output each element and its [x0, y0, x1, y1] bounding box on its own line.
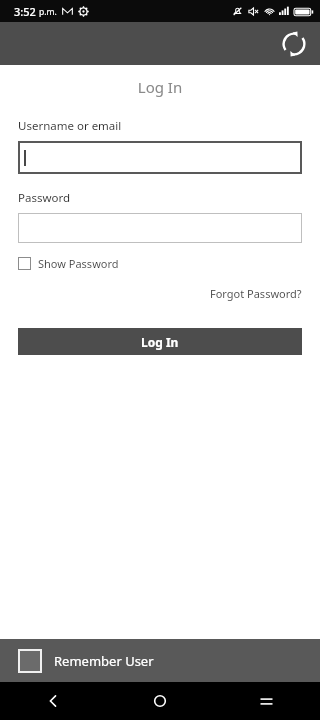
- button[interactable]: Log In: [18, 328, 302, 355]
- button[interactable]: Recent apps: [213, 682, 320, 720]
- button[interactable]: Forgot Password?: [210, 286, 302, 301]
- button[interactable]: Show Password: [18, 256, 119, 271]
- staticText: Forgot Password?: [210, 286, 302, 301]
- staticText: Show Password: [38, 256, 119, 271]
- button[interactable]: [18, 213, 302, 243]
- staticText: 3:52: [14, 4, 36, 19]
- button[interactable]: Refresh: [275, 25, 313, 63]
- staticText: Remember User: [54, 652, 154, 670]
- button[interactable]: [18, 141, 302, 174]
- staticText: Log In: [0, 77, 320, 97]
- staticText: Password: [18, 190, 71, 206]
- button[interactable]: Remember User: [0, 639, 320, 682]
- staticText: Log In: [141, 334, 179, 350]
- button[interactable]: Back: [0, 682, 106, 720]
- staticText: p.m.: [39, 6, 57, 18]
- button[interactable]: Home: [106, 682, 213, 720]
- staticText: Username or email: [18, 118, 122, 134]
